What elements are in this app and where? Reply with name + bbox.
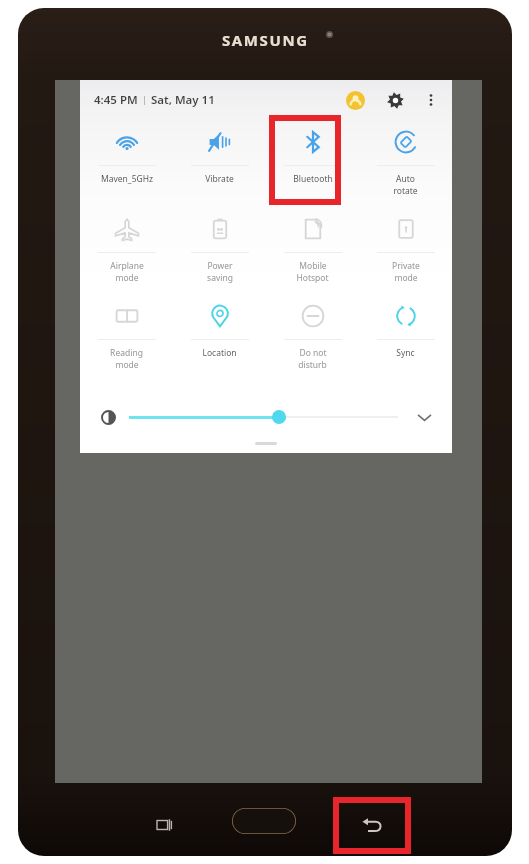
staticText: Bluetooth xyxy=(293,173,333,185)
button[interactable]: User profile xyxy=(342,87,368,113)
staticText: saving xyxy=(207,272,233,284)
staticText: Power xyxy=(207,260,233,272)
staticText: Vibrate xyxy=(205,173,234,185)
staticText: rotate xyxy=(393,185,418,197)
staticText: mode xyxy=(115,272,139,284)
other: Bluetooth highlight xyxy=(272,118,338,202)
staticText: 4:45 PM xyxy=(94,92,138,108)
button[interactable]: More options xyxy=(420,89,442,111)
staticText: Reading xyxy=(110,347,143,359)
staticText: Location xyxy=(202,347,237,359)
staticText: Maven_5GHz xyxy=(101,173,153,185)
staticText: Do not xyxy=(299,347,327,359)
button[interactable]: Airplane xyxy=(80,207,173,294)
staticText: mode xyxy=(115,359,139,371)
button[interactable]: Private xyxy=(359,207,452,294)
button[interactable]: Back xyxy=(342,805,402,845)
button[interactable]: Power xyxy=(173,207,266,294)
other: Back key highlight xyxy=(336,800,408,851)
button[interactable]: Do not xyxy=(266,294,359,381)
staticText: Sync xyxy=(396,347,415,359)
button[interactable]: Brightness slider xyxy=(272,410,286,424)
staticText: Hotspot xyxy=(296,272,329,284)
staticText: Sat, May 11 xyxy=(151,92,215,108)
button[interactable]: Recents xyxy=(135,805,195,845)
button[interactable]: Collapse panel xyxy=(255,442,277,445)
button[interactable]: Vibrate xyxy=(173,120,266,207)
staticText: mode xyxy=(394,272,418,284)
other: Brightness xyxy=(102,411,115,424)
button[interactable]: Sync xyxy=(359,294,452,381)
button[interactable]: Bluetooth xyxy=(266,120,359,207)
button[interactable]: Expand xyxy=(414,407,434,427)
staticText: Mobile xyxy=(299,260,327,272)
button[interactable]: Mobile xyxy=(266,207,359,294)
button[interactable]: Home xyxy=(232,808,296,834)
button[interactable]: Auto xyxy=(359,120,452,207)
button[interactable]: Reading xyxy=(80,294,173,381)
button[interactable]: Settings xyxy=(382,87,408,113)
staticText: disturb xyxy=(298,359,327,371)
button[interactable]: Maven_5GHz xyxy=(80,120,173,207)
button[interactable]: Location xyxy=(173,294,266,381)
staticText: Airplane xyxy=(110,260,144,272)
staticText: Private xyxy=(392,260,420,272)
staticText: Auto xyxy=(396,173,415,185)
staticText: SAMSUNG xyxy=(222,30,309,50)
